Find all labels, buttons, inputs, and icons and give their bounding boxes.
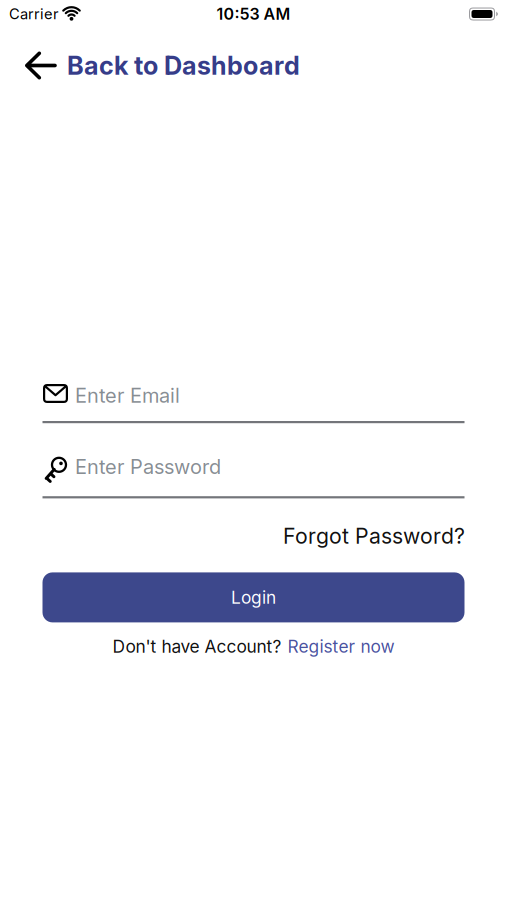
staticText: Don't have Account? (112, 636, 281, 657)
staticText: Carrier (9, 5, 59, 23)
button[interactable]: Forgot Password? (283, 523, 465, 548)
button[interactable]: Register now (287, 636, 394, 657)
staticText: Enter Email (75, 384, 180, 407)
button[interactable]: Enter Email (0, 379, 507, 423)
staticText: Forgot Password? (283, 523, 465, 548)
button[interactable]: Back to Dashboard (25, 51, 300, 80)
button[interactable]: Enter Password (0, 454, 507, 498)
staticText: 10:53 AM (216, 5, 290, 23)
staticText: Back to Dashboard (67, 51, 300, 80)
staticText: Register now (287, 636, 394, 657)
staticText: Login (231, 587, 276, 608)
button[interactable]: Login (42, 572, 464, 622)
staticText: Enter Password (75, 455, 221, 478)
